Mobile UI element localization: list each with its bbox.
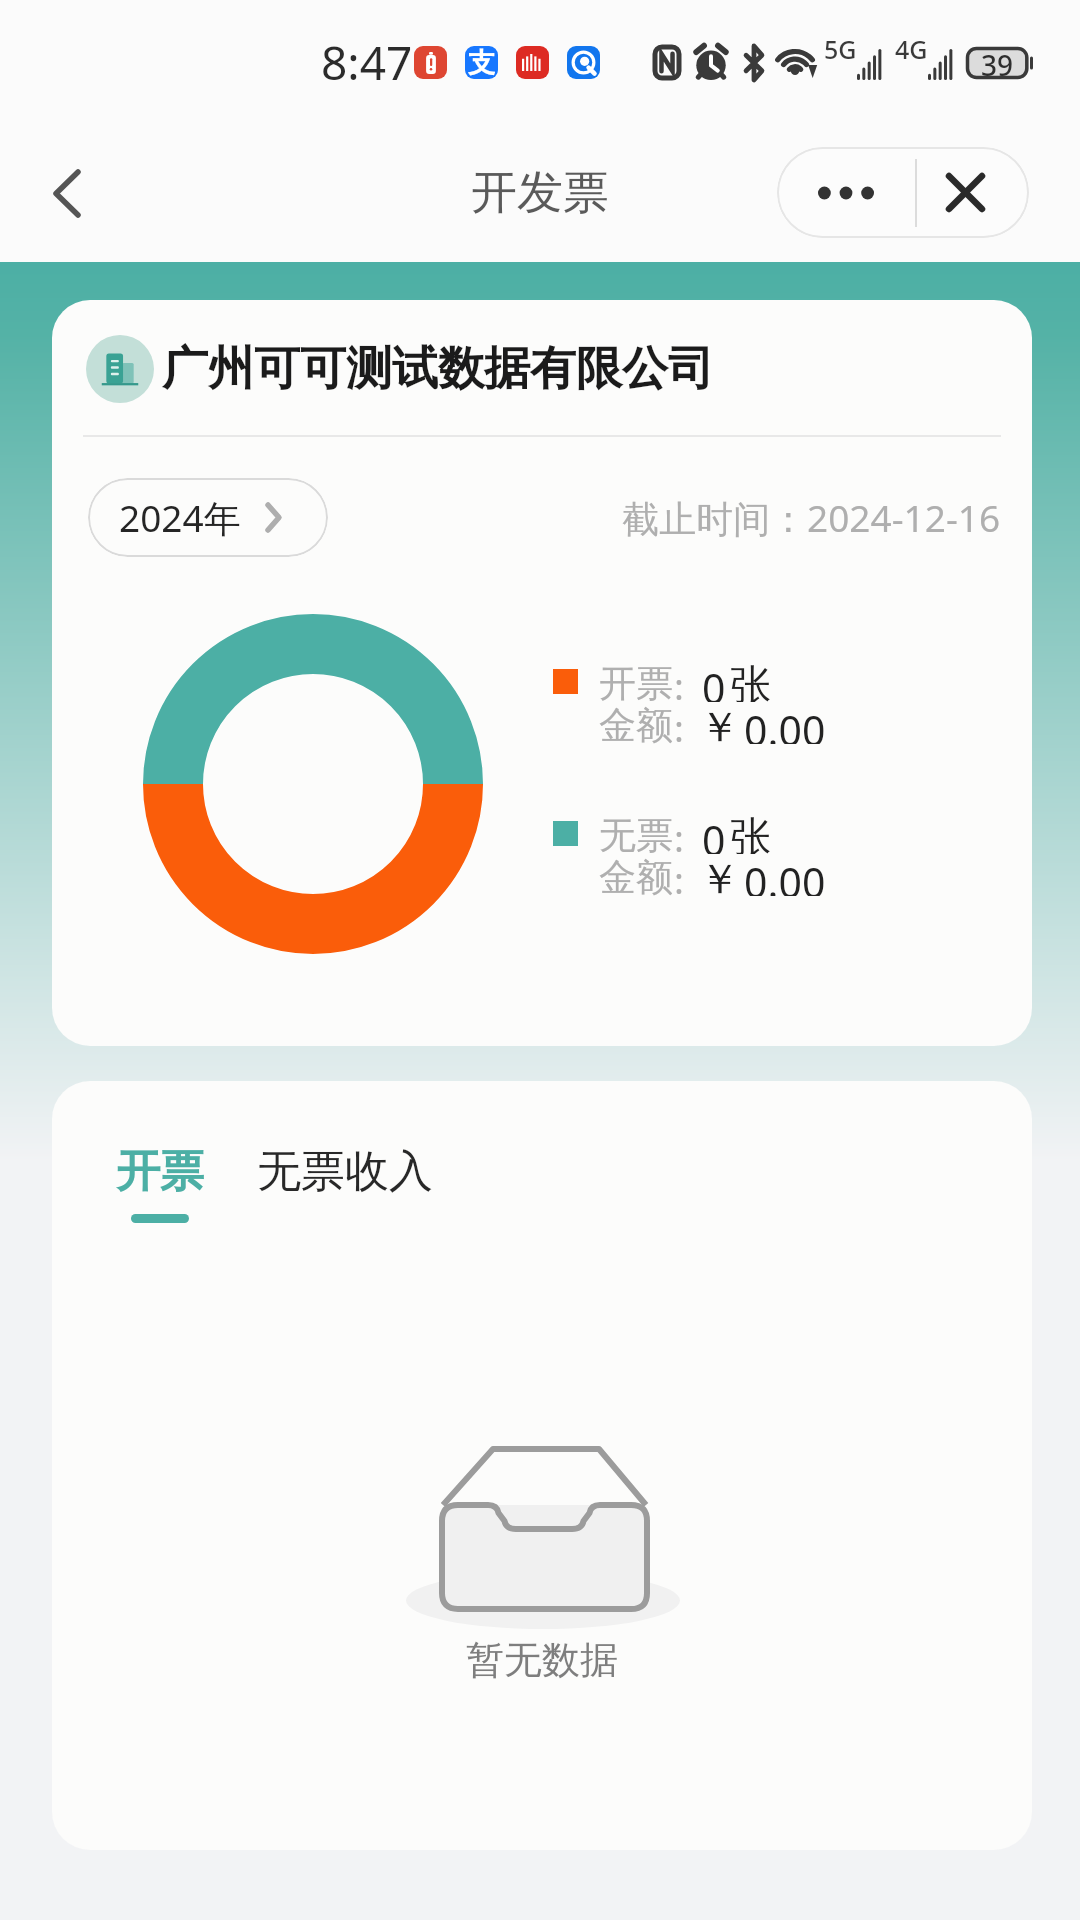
button[interactable]: 广州可可测试数据有限公司 (52, 335, 1032, 403)
staticText: 广州可可测试数据有限公司 (162, 340, 714, 398)
staticText: 截止时间：2024-12-16 (622, 492, 1001, 543)
staticText: 金额 (599, 854, 673, 896)
button[interactable]: 无票收入 (257, 1137, 433, 1223)
staticText: 开票 (116, 1144, 204, 1199)
staticText: 0 (702, 660, 726, 702)
staticText: : (674, 660, 684, 702)
staticText: 开发票 (471, 164, 609, 222)
staticText: 0 (702, 812, 726, 854)
staticText: 暂无数据 (466, 1636, 618, 1684)
staticText: 8:47 (321, 31, 413, 94)
staticText: 4G (895, 32, 928, 66)
button[interactable]: 开票 (116, 1137, 204, 1223)
button[interactable]: 2024年 (88, 478, 328, 557)
staticText: 39 (981, 46, 1014, 78)
staticText: 0.00 (744, 702, 826, 744)
staticText: : (674, 854, 684, 896)
staticText: 无票收入 (257, 1144, 433, 1199)
staticText: ￥ (699, 702, 740, 744)
staticText: 金额 (599, 702, 673, 744)
staticText: 支 (468, 46, 495, 79)
staticText: : (674, 702, 684, 744)
staticText: : (674, 812, 684, 854)
button[interactable]: More options (777, 147, 915, 238)
staticText: 张 (730, 660, 771, 702)
staticText: 0.00 (744, 854, 826, 896)
button[interactable]: Close (917, 147, 1029, 238)
button[interactable]: Back (22, 148, 112, 238)
staticText: 2024年 (119, 492, 241, 543)
staticText: ￥ (699, 854, 740, 896)
staticText: 5G (824, 32, 857, 66)
staticText: 无票 (599, 812, 673, 854)
staticText: 开票 (599, 660, 673, 702)
staticText: 张 (730, 812, 771, 854)
